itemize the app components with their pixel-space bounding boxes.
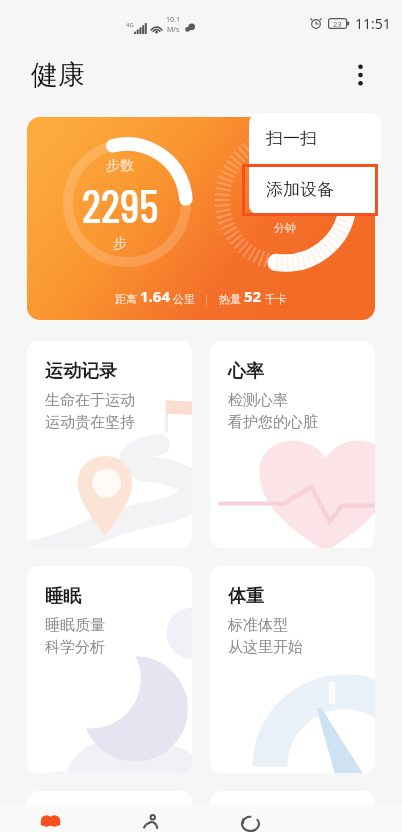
- button[interactable]: 步数: [27, 117, 375, 320]
- staticText: 睡眠: [45, 585, 81, 608]
- staticText: 健康: [31, 58, 85, 92]
- staticText: 体重: [228, 585, 264, 608]
- staticText: 步: [113, 235, 127, 253]
- staticText: 睡眠质量: [45, 616, 105, 635]
- staticText: 公里: [170, 291, 195, 306]
- button[interactable]: 体重: [210, 566, 375, 773]
- button[interactable]: [210, 791, 375, 832]
- button[interactable]: [27, 791, 192, 832]
- staticText: 从这里开始: [228, 638, 303, 657]
- staticText: 科学分析: [45, 638, 105, 657]
- staticText: 添加设备: [266, 179, 334, 200]
- staticText: 看护您的心脏: [228, 413, 318, 432]
- staticText: 热量: [219, 291, 244, 306]
- staticText: M/s: [167, 25, 180, 35]
- staticText: 检测心率: [228, 391, 288, 410]
- staticText: 生命在于运动: [45, 391, 135, 410]
- staticText: 标准体型: [228, 616, 288, 635]
- staticText: 心率: [228, 360, 264, 383]
- button[interactable]: Discover: [200, 805, 301, 832]
- staticText: 步数: [106, 157, 134, 175]
- staticText: 10.1: [166, 15, 180, 25]
- staticText: 运动记录: [45, 360, 117, 383]
- staticText: 1.64: [140, 286, 170, 306]
- button[interactable]: 添加设备: [249, 164, 381, 215]
- staticText: 4G: [126, 21, 134, 29]
- staticText: 11:51: [355, 14, 391, 33]
- button[interactable]: 运动记录: [27, 341, 192, 548]
- staticText: 2295: [82, 177, 159, 232]
- staticText: 分钟: [265, 221, 305, 235]
- button[interactable]: 心率: [210, 341, 375, 548]
- staticText: 千卡: [262, 291, 287, 306]
- staticText: 扫一扫: [266, 128, 317, 149]
- button[interactable]: Exercise: [100, 805, 200, 832]
- button[interactable]: More options: [342, 57, 378, 93]
- button[interactable]: 睡眠: [27, 566, 192, 773]
- button[interactable]: Health: [0, 805, 100, 832]
- staticText: 52: [244, 286, 262, 306]
- button[interactable]: 扫一扫: [249, 113, 381, 164]
- staticText: 23: [333, 19, 342, 29]
- staticText: 运动贵在坚持: [45, 413, 135, 432]
- staticText: 距离: [115, 291, 140, 306]
- staticText: |: [195, 291, 219, 306]
